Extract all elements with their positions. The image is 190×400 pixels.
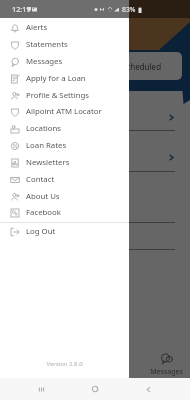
button[interactable]: Scheduled (8, 52, 182, 80)
staticText: Scheduled (122, 61, 162, 72)
staticText: $1,284.55 (17, 110, 59, 122)
button[interactable]: Savings (8, 131, 182, 172)
button[interactable]: Back (142, 378, 154, 400)
button[interactable]: Recents (36, 378, 46, 400)
button[interactable]: Apply for a Loan (0, 70, 129, 87)
button[interactable]: Profile & Settings (0, 87, 129, 104)
button[interactable]: Accounts (47, 340, 94, 378)
button[interactable]: Credit Card (8, 172, 182, 223)
button[interactable]: Statements (0, 36, 129, 53)
staticText: Log Out (26, 226, 56, 237)
button[interactable]: About Us (0, 188, 129, 205)
staticText: Messages (26, 56, 63, 67)
staticText: Auto Loan (17, 230, 53, 240)
staticText: 83% (122, 5, 136, 14)
staticText: Facebook (26, 207, 61, 218)
staticText: Newsletters (26, 157, 70, 168)
staticText: Allpoint ATM Locator (26, 106, 102, 117)
staticText: Contact (26, 174, 55, 185)
button[interactable]: Locations (0, 120, 129, 137)
staticText: $412.10 (17, 191, 51, 203)
staticText: $8,013.92 (17, 150, 59, 162)
button[interactable]: Newsletters (0, 154, 129, 171)
staticText: Credit Card (17, 179, 57, 189)
staticText: Messages (150, 367, 183, 377)
staticText: Version 2.8.0 (0, 360, 129, 368)
button[interactable]: Loan Rates (0, 137, 129, 154)
button[interactable]: Checking (8, 91, 182, 131)
staticText: 12:19 (12, 4, 31, 14)
button[interactable]: Home (89, 378, 101, 400)
staticText: Loan Rates (26, 140, 67, 151)
staticText: Savings (17, 138, 44, 148)
button[interactable]: Alerts (0, 19, 129, 36)
button[interactable]: Contact (0, 171, 129, 188)
staticText: Locations (26, 123, 62, 134)
staticText: Profile & Settings (26, 90, 90, 101)
button[interactable]: Facebook (0, 204, 129, 221)
staticText: Alerts (26, 22, 48, 33)
button[interactable]: Allpoint ATM Locator (0, 103, 129, 120)
button[interactable]: Mortgage (8, 250, 182, 295)
button[interactable]: Auto Loan (8, 223, 182, 250)
button[interactable]: Pay (94, 340, 142, 378)
button[interactable]: Messages (0, 53, 129, 70)
staticText: Statements (26, 39, 68, 50)
staticText: About Us (26, 191, 60, 202)
button[interactable]: Log Out (0, 223, 129, 240)
button[interactable]: Messages (142, 340, 190, 378)
staticText: Apply for a Loan (26, 73, 86, 84)
